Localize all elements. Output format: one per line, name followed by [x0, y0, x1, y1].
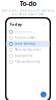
staticText: Book dentist — [14, 54, 32, 57]
staticText: Today — [9, 21, 21, 27]
button[interactable]: Add task — [40, 91, 46, 97]
staticText: Add to-dos, check them off, and keep — [1, 9, 54, 12]
button[interactable]: Write weekly notes — [6, 47, 49, 53]
staticText: Team standup — [14, 42, 35, 45]
button[interactable]: Buy groceries — [6, 29, 49, 35]
staticText: Plan weekend trip — [14, 60, 40, 63]
button[interactable]: Plan weekend trip — [6, 59, 49, 65]
staticText: To-do — [19, 0, 36, 8]
staticText: your whole day on track. — [11, 12, 44, 16]
button[interactable]: Book dentist — [6, 53, 49, 59]
button[interactable]: Team standup — [6, 41, 49, 47]
button[interactable]: Reply to emails — [6, 35, 49, 41]
staticText: Buy groceries — [14, 30, 33, 33]
staticText: Reply to emails — [14, 36, 35, 39]
staticText: Write weekly notes — [14, 48, 40, 51]
